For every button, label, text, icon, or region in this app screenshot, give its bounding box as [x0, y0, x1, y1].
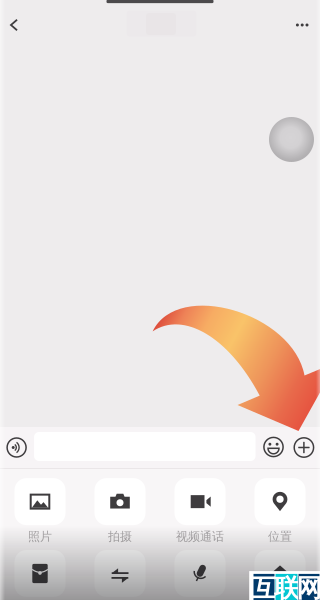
- button[interactable]: Attachments: [290, 430, 318, 464]
- staticText: 拍摄: [108, 529, 132, 544]
- button[interactable]: 位置: [240, 478, 320, 544]
- staticText: 位置: [268, 529, 292, 544]
- staticText: 互: [251, 573, 276, 600]
- button[interactable]: 拍摄: [80, 478, 160, 544]
- staticText: 照片: [28, 529, 52, 544]
- button[interactable]: More: [285, 8, 319, 42]
- button[interactable]: Emoji: [259, 430, 287, 464]
- button[interactable]: Back: [0, 7, 30, 43]
- button[interactable]: 转账: [80, 550, 160, 597]
- button[interactable]: 红包: [0, 550, 80, 597]
- button[interactable]: 收藏: [240, 550, 320, 597]
- staticText: 网: [296, 573, 320, 600]
- staticText: 视频通话: [176, 529, 224, 544]
- button[interactable]: 语音输入: [160, 550, 240, 597]
- staticText: 联: [274, 573, 299, 600]
- button[interactable]: 照片: [0, 478, 80, 544]
- button[interactable]: Voice message: [2, 429, 32, 465]
- button[interactable]: 视频通话: [160, 478, 240, 544]
